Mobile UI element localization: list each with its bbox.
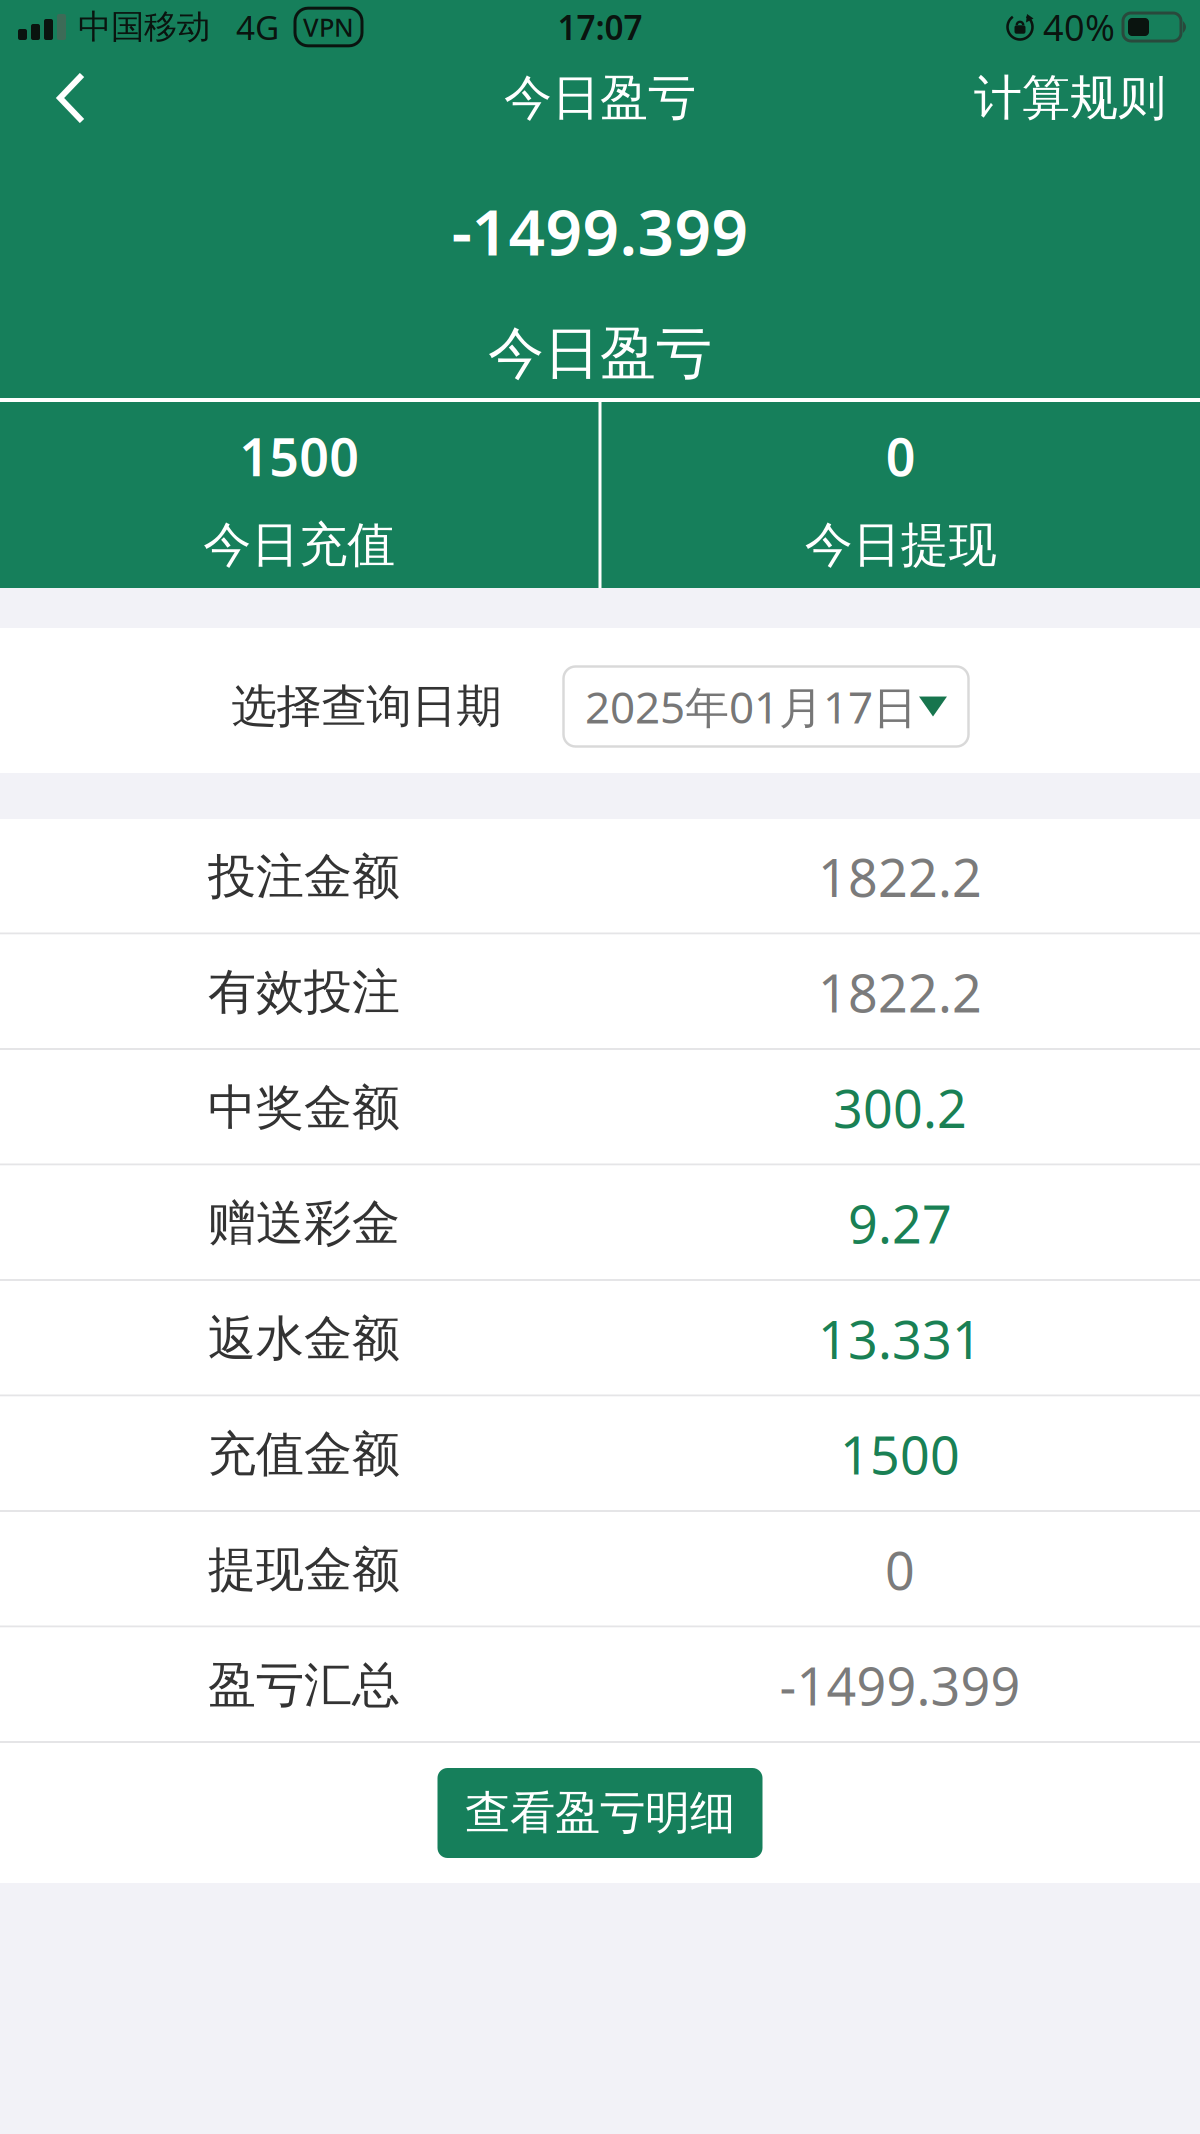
staticText: 返水金额 xyxy=(208,1309,400,1368)
staticText: 有效投注 xyxy=(208,963,400,1022)
staticText: 300.2 xyxy=(833,1073,967,1142)
button[interactable]: 计算规则 xyxy=(974,68,1200,127)
staticText: 2025年01月17日 xyxy=(585,677,917,736)
staticText: 17:07 xyxy=(557,5,642,49)
staticText: 9.27 xyxy=(848,1189,952,1258)
staticText: 4G xyxy=(236,5,279,49)
staticText: 1822.2 xyxy=(818,842,982,911)
staticText: 今日充值 xyxy=(203,515,395,574)
staticText: 今日盈亏 xyxy=(504,68,696,127)
staticText: VPN xyxy=(303,10,354,44)
staticText: 40% xyxy=(1043,3,1115,51)
staticText: 提现金额 xyxy=(208,1540,400,1599)
staticText: 13.331 xyxy=(818,1304,982,1373)
staticText: 1822.2 xyxy=(818,958,982,1027)
staticText: 1500 xyxy=(239,421,359,491)
staticText: 选择查询日期 xyxy=(231,679,501,734)
staticText: 计算规则 xyxy=(974,68,1166,127)
button[interactable]: 返回 xyxy=(0,54,86,142)
staticText: -1499.399 xyxy=(779,1651,1020,1720)
staticText: 今日提现 xyxy=(805,515,997,574)
staticText: 查看盈亏明细 xyxy=(465,1785,735,1841)
button[interactable]: 选择日期 xyxy=(563,666,968,746)
staticText: -1499.399 xyxy=(451,188,748,273)
staticText: 充值金额 xyxy=(208,1425,400,1484)
staticText: 中国移动 xyxy=(78,6,210,47)
button[interactable]: 查看盈亏明细 xyxy=(437,1768,762,1858)
staticText: 投注金额 xyxy=(208,847,400,906)
staticText: 1500 xyxy=(840,1420,960,1489)
staticText: 0 xyxy=(885,1535,915,1604)
staticText: 赠送彩金 xyxy=(208,1194,400,1253)
staticText: 中奖金额 xyxy=(208,1078,400,1137)
staticText: 今日盈亏 xyxy=(488,319,712,388)
staticText: 盈亏汇总 xyxy=(208,1656,400,1715)
staticText: 0 xyxy=(886,421,916,491)
